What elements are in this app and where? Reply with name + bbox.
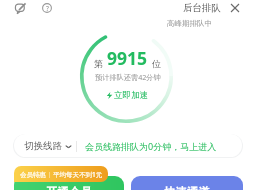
staticText: 9915 — [107, 46, 148, 70]
staticText: 高峰期排队中 — [167, 19, 212, 28]
staticText: 位 — [152, 58, 161, 69]
staticText: 第 — [94, 58, 103, 69]
button[interactable]: 开通会员 — [14, 176, 124, 190]
staticText: 开通会员 — [46, 185, 92, 190]
staticText: ? — [46, 4, 49, 13]
staticText: 会员线路排队为0分钟，马上进入 — [85, 140, 217, 152]
staticText: 快速通道 — [164, 185, 210, 190]
button[interactable]: Help — [39, 0, 55, 16]
staticText: 平均每天不到1元 — [53, 170, 103, 179]
staticText: 会员特惠 — [20, 171, 46, 179]
staticText: 后台排队 — [183, 2, 221, 14]
staticText: 切换线路 — [24, 140, 62, 152]
button[interactable]: 切换线路 — [14, 134, 242, 157]
button[interactable]: Feedback — [12, 0, 28, 16]
button[interactable]: 快速通道 — [131, 176, 243, 190]
button[interactable]: Close — [228, 1, 242, 15]
staticText: 立即加速 — [114, 90, 149, 101]
staticText: 预计排队还需42分钟 — [95, 72, 161, 82]
